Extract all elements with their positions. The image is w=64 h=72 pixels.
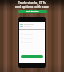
button[interactable] <box>21 55 43 58</box>
button[interactable]: Get started <box>18 10 47 13</box>
staticText: Trade stocks, ETFs and options with ease <box>15 1 49 8</box>
staticText: Get started <box>26 10 39 13</box>
